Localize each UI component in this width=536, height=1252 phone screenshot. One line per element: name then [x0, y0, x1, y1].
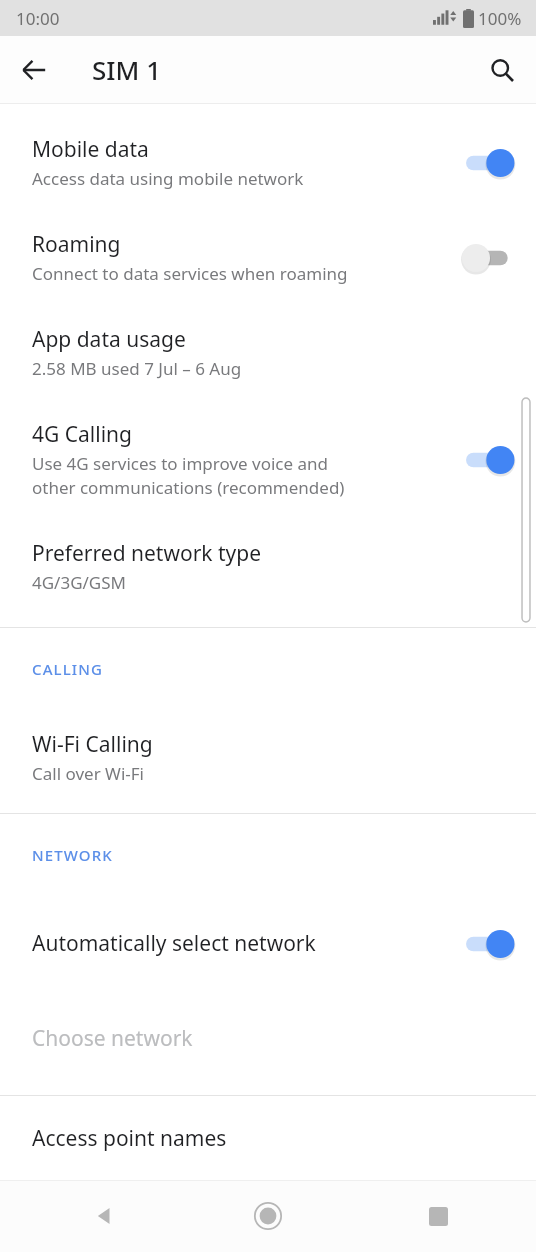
button[interactable]: Choose network: [0, 991, 536, 1086]
button[interactable]: Preferred network type: [0, 519, 536, 614]
staticText: Access point names: [32, 1124, 227, 1153]
staticText: Mobile data: [32, 135, 149, 164]
button[interactable]: Wi-Fi Calling: [0, 710, 536, 805]
staticText: Access data using mobile network: [32, 167, 304, 190]
staticText: App data usage: [32, 325, 186, 354]
staticText: 4G Calling: [32, 420, 132, 449]
button[interactable]: Toggle on: [464, 928, 516, 960]
button[interactable]: 4G Calling: [0, 400, 536, 519]
staticText: NETWORK: [32, 845, 113, 865]
button[interactable]: Home: [242, 1190, 294, 1242]
button[interactable]: Toggle off: [464, 242, 516, 274]
button[interactable]: Roaming: [0, 210, 536, 305]
staticText: Choose network: [32, 1024, 193, 1053]
staticText: 100%: [478, 7, 522, 30]
staticText: 4G/3G/GSM: [32, 571, 126, 594]
button[interactable]: Access point names: [0, 1096, 536, 1180]
button[interactable]: App data usage: [0, 305, 536, 400]
button[interactable]: Automatically select network: [0, 896, 536, 991]
staticText: CALLING: [32, 659, 103, 679]
staticText: Use 4G services to improve voice and oth…: [32, 452, 345, 499]
staticText: 10:00: [16, 7, 60, 30]
staticText: Preferred network type: [32, 539, 262, 568]
staticText: SIM 1: [92, 52, 162, 87]
button[interactable]: Back: [80, 1190, 132, 1242]
staticText: Roaming: [32, 230, 121, 259]
button[interactable]: Mobile data: [0, 115, 536, 210]
staticText: Connect to data services when roaming: [32, 262, 348, 285]
button[interactable]: Toggle on: [464, 444, 516, 476]
staticText: Call over Wi-Fi: [32, 762, 144, 785]
button[interactable]: Recent apps: [412, 1190, 464, 1242]
staticText: Wi-Fi Calling: [32, 730, 153, 759]
button[interactable]: Back: [8, 44, 60, 96]
button[interactable]: Search: [476, 44, 528, 96]
button[interactable]: Toggle on: [464, 147, 516, 179]
staticText: 2.58 MB used 7 Jul – 6 Aug: [32, 357, 242, 380]
staticText: Automatically select network: [32, 929, 316, 958]
